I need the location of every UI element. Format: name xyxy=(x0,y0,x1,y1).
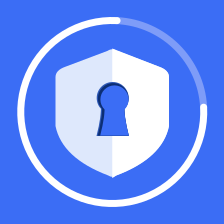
button[interactable]: Security status xyxy=(0,0,224,224)
